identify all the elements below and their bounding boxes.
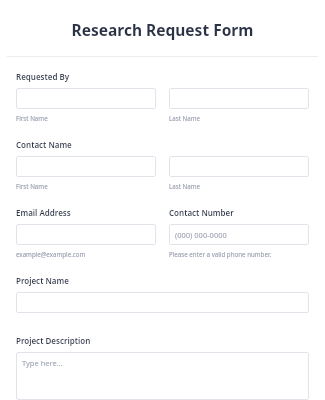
staticText: example@example.com (16, 250, 86, 258)
staticText: First Name (16, 114, 48, 122)
staticText: Please enter a valid phone number. (169, 250, 272, 258)
button[interactable] (16, 88, 156, 109)
button[interactable] (169, 156, 309, 177)
staticText: Email Address (16, 207, 71, 218)
staticText: Project Description (16, 335, 91, 346)
staticText: First Name (16, 182, 48, 190)
staticText: Contact Name (16, 139, 72, 150)
staticText: Last Name (169, 182, 200, 190)
button[interactable] (16, 292, 309, 313)
staticText: Research Request Form (0, 19, 325, 40)
button[interactable]: Type here... (16, 352, 309, 400)
staticText: Contact Number (169, 207, 234, 218)
button[interactable] (169, 88, 309, 109)
staticText: (000) 000-0000 (175, 230, 227, 240)
button[interactable] (16, 156, 156, 177)
staticText: Last Name (169, 114, 200, 122)
button[interactable] (16, 224, 156, 245)
staticText: Requested By (16, 71, 70, 82)
staticText: Project Name (16, 275, 69, 286)
staticText: Type here... (22, 358, 63, 368)
button[interactable]: (000) 000-0000 (169, 224, 309, 245)
